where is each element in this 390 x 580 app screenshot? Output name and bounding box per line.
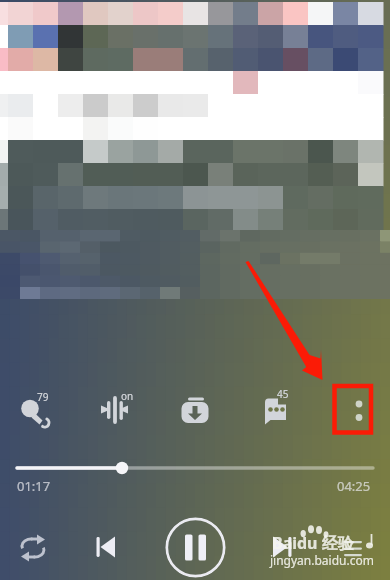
staticText: on [121, 389, 134, 403]
button[interactable]: Equalizer [92, 385, 142, 435]
staticText: 79 [37, 390, 49, 404]
staticText: jingyan.baidu.com [270, 552, 374, 568]
staticText: 01:17 [17, 477, 51, 495]
staticText: Baidu 经验 [272, 532, 354, 554]
button[interactable]: Playlist [334, 528, 374, 568]
button[interactable]: Pause [165, 517, 226, 578]
button[interactable]: More options [333, 385, 373, 433]
button[interactable]: Comments [250, 385, 300, 435]
button[interactable]: Lyrics [10, 385, 60, 435]
staticText: 04:25 [337, 477, 371, 495]
button[interactable]: Previous [86, 527, 126, 567]
staticText: 45 [277, 387, 289, 401]
button[interactable]: Repeat [13, 528, 53, 568]
button[interactable]: Next [262, 527, 302, 567]
button[interactable]: Download [170, 385, 220, 435]
